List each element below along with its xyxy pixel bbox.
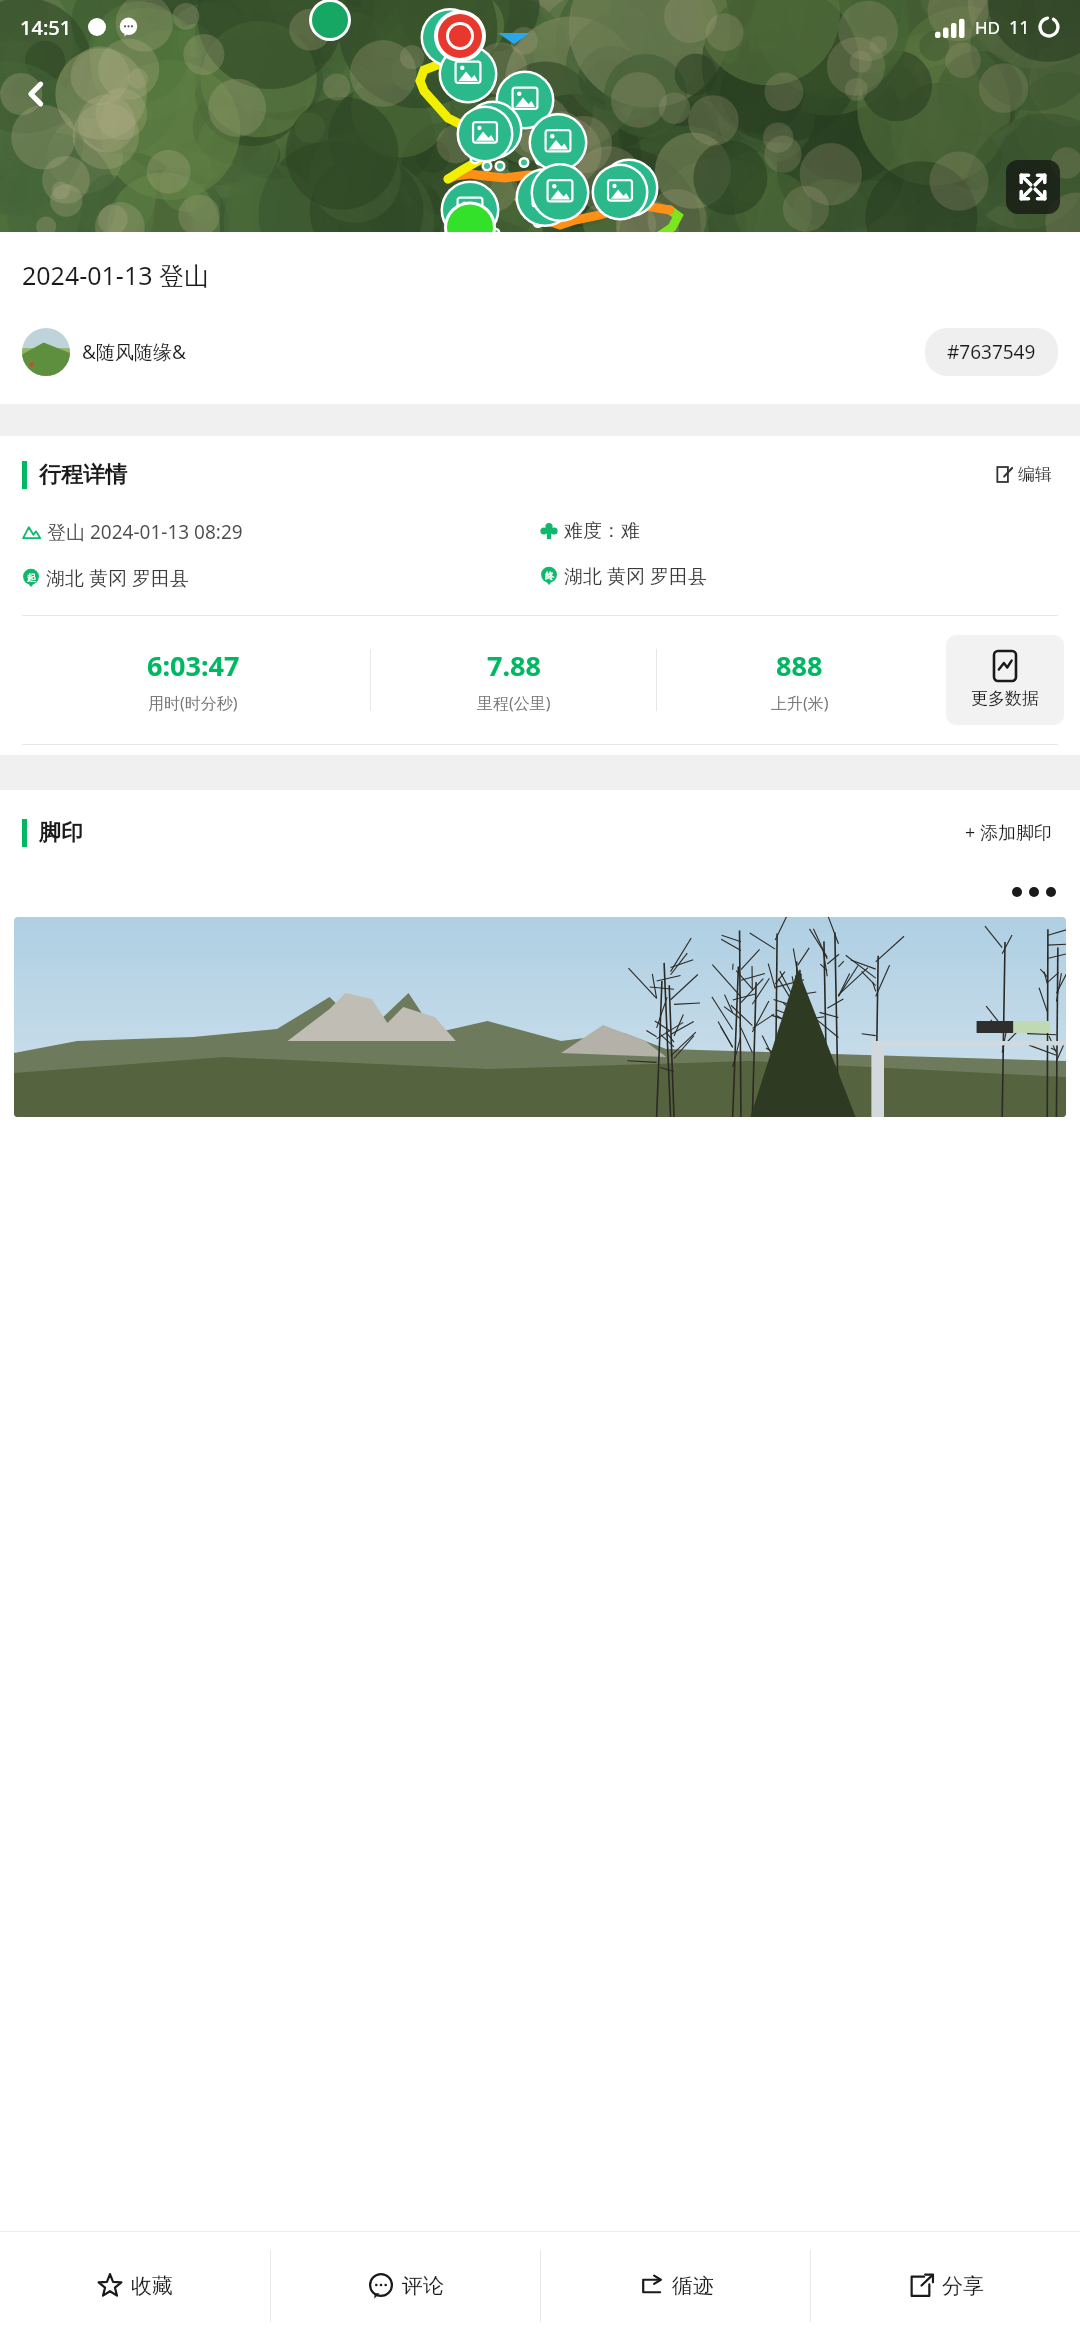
staticText: + 添加脚印 [965,820,1052,845]
button[interactable]: 更多数据 [946,635,1064,725]
button[interactable]: 7.88 [371,647,656,714]
staticText: HD [975,16,1001,39]
staticText: 难度：难 [564,519,640,543]
staticText: 评论 [402,2273,444,2299]
button[interactable]: User avatar [22,328,70,376]
staticText: 用时(时分秒) [148,692,238,714]
button[interactable]: 分享 [811,2232,1080,2340]
staticText: 循迹 [672,2273,714,2299]
staticText: 编辑 [1018,464,1052,485]
button[interactable]: #7637549 [925,328,1058,376]
button[interactable]: 888 [657,647,942,714]
staticText: 终 [545,570,554,581]
staticText: 上升(米) [771,692,829,714]
staticText: 7.88 [487,647,541,684]
staticText: 湖北 黄冈 罗田县 [46,565,189,591]
button[interactable]: 评论 [271,2232,540,2340]
staticText: 里程(公里) [477,692,551,714]
staticText: &随风随缘& [82,339,186,365]
staticText: 2024-01-13 登山 [22,258,210,292]
staticText: 更多数据 [971,688,1039,709]
button[interactable]: Fullscreen [1006,160,1060,214]
staticText: 湖北 黄冈 罗田县 [564,563,707,589]
button[interactable]: 编辑 [990,458,1058,491]
staticText: 行程详情 [39,461,127,489]
staticText: 11 [1009,15,1030,40]
staticText: 登山 2024-01-13 08:29 [47,519,243,545]
staticText: 888 [776,647,823,684]
staticText: 收藏 [131,2273,173,2299]
button[interactable]: + 添加脚印 [959,814,1058,851]
staticText: 14:51 [20,14,72,41]
button[interactable]: 6:03:47 [16,647,370,714]
staticText: 脚印 [39,819,83,847]
staticText: 分享 [942,2273,984,2299]
button[interactable]: Trip photo [14,917,1066,1117]
staticText: #7637549 [947,339,1036,365]
staticText: 6:03:47 [147,647,240,684]
button[interactable]: 收藏 [0,2232,270,2340]
button[interactable]: More options [1006,881,1054,903]
staticText: 起 [27,572,36,583]
button[interactable]: 循迹 [541,2232,810,2340]
button[interactable]: Back [14,72,58,116]
